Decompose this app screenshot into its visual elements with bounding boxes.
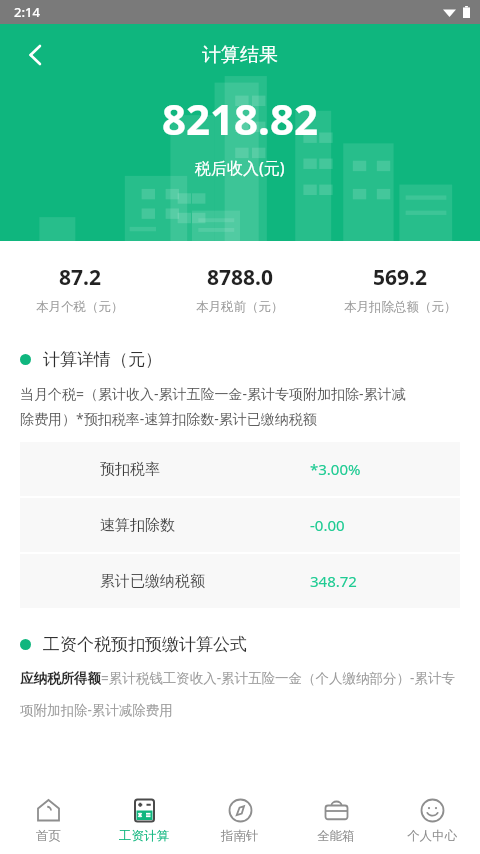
- staticText: 预扣税率: [100, 460, 160, 479]
- staticText: 税后收入(元): [195, 157, 285, 179]
- staticText: 87.2: [59, 263, 101, 292]
- button[interactable]: 速算扣除数: [20, 498, 460, 552]
- staticText: *3.00%: [310, 459, 361, 479]
- staticText: 个人中心: [407, 828, 457, 844]
- staticText: 569.2: [373, 263, 427, 292]
- staticText: 指南针: [221, 828, 259, 844]
- button[interactable]: 指南针: [192, 787, 288, 854]
- staticText: 计算结果: [202, 43, 278, 67]
- button[interactable]: 个人中心: [384, 787, 480, 854]
- staticText: 本月税前（元）: [196, 299, 284, 315]
- staticText: 本月个税（元）: [36, 299, 124, 315]
- staticText: 应纳税所得额=累计税钱工资收入-累计五险一金（个人缴纳部分）-累计专项附加扣除-…: [20, 669, 460, 719]
- staticText: 8788.0: [207, 263, 273, 292]
- staticText: 本月扣除总额（元）: [344, 299, 457, 315]
- button[interactable]: 全能箱: [288, 787, 384, 854]
- button[interactable]: 累计已缴纳税额: [20, 554, 460, 608]
- button[interactable]: Back: [12, 31, 60, 79]
- staticText: 8218.82: [162, 90, 318, 147]
- button[interactable]: 工资计算: [96, 787, 192, 854]
- staticText: 全能箱: [317, 828, 355, 844]
- staticText: 累计已缴纳税额: [100, 572, 205, 591]
- staticText: 当月个税=（累计收入-累计五险一金-累计专项附加扣除-累计减 除费用）*预扣税率…: [20, 384, 460, 428]
- staticText: 348.72: [310, 571, 357, 591]
- staticText: 工资个税预扣预缴计算公式: [43, 634, 247, 655]
- staticText: -0.00: [310, 515, 345, 535]
- button[interactable]: 预扣税率: [20, 442, 460, 496]
- staticText: 计算详情（元）: [43, 349, 162, 370]
- staticText: 工资计算: [119, 828, 169, 844]
- staticText: 首页: [36, 828, 61, 844]
- staticText: 速算扣除数: [100, 516, 175, 535]
- staticText: 2:14: [14, 3, 40, 21]
- button[interactable]: 首页: [0, 787, 96, 854]
